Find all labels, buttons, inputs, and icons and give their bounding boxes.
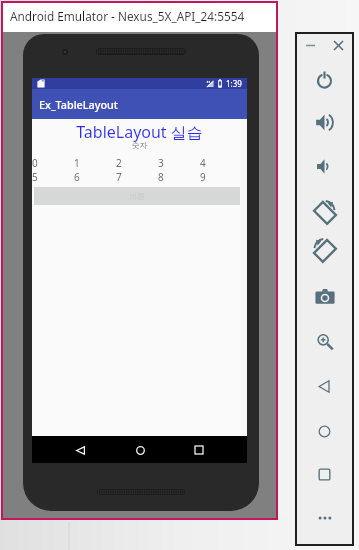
staticText: 8 — [158, 170, 164, 182]
staticText: 숫자 — [32, 140, 247, 150]
staticText: 9 — [200, 170, 206, 182]
button[interactable]: Rotate left — [297, 195, 352, 227]
staticText: TableLayout 실습 — [32, 121, 247, 143]
staticText: 3 — [158, 156, 164, 168]
staticText: 1 — [74, 156, 80, 168]
staticText: 1:39 — [226, 78, 242, 89]
button[interactable]: Back — [69, 439, 91, 461]
staticText: 5 — [32, 170, 38, 182]
button[interactable]: Volume down — [297, 150, 352, 182]
button[interactable]: Take screenshot — [297, 281, 352, 313]
button[interactable]: More — [297, 502, 352, 534]
staticText: Ex_TableLayout — [39, 97, 118, 112]
button[interactable]: Zoom — [297, 326, 352, 358]
button[interactable]: Rotate right — [297, 233, 352, 265]
button[interactable]: Power — [297, 63, 352, 95]
button[interactable]: Minimize — [302, 37, 319, 54]
button[interactable]: Home — [129, 439, 151, 461]
staticText: 4 — [200, 156, 206, 168]
staticText: 버튼 — [129, 191, 145, 201]
button[interactable]: Volume up — [297, 106, 352, 138]
button[interactable]: Close — [330, 37, 347, 54]
button[interactable]: Recent apps — [188, 439, 210, 461]
staticText: Android Emulator - Nexus_5X_API_24:5554 — [10, 8, 245, 24]
button[interactable]: Overview — [297, 458, 352, 490]
staticText: 7 — [116, 170, 122, 182]
button[interactable]: Home — [297, 415, 352, 447]
staticText: 6 — [74, 170, 80, 182]
staticText: 2 — [116, 156, 122, 168]
button[interactable]: Back — [297, 370, 352, 402]
staticText: 0 — [32, 156, 38, 168]
